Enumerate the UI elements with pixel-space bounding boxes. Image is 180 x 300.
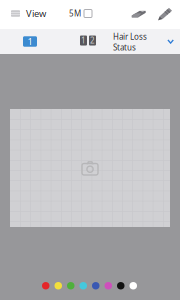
button[interactable]: Colour 3 — [67, 282, 74, 289]
staticText: 1 — [27, 35, 32, 48]
button[interactable]: Colour 2 — [54, 282, 62, 289]
staticText: View — [26, 7, 46, 20]
staticText: 5M — [69, 8, 81, 19]
button[interactable]: Pencil — [155, 4, 175, 25]
button[interactable]: View — [11, 3, 46, 24]
button[interactable]: Colour 8 — [129, 282, 137, 289]
button[interactable]: Colour 6 — [104, 282, 112, 289]
button[interactable]: Layer 1 — [19, 31, 41, 52]
button[interactable]: 5M — [69, 3, 92, 24]
button[interactable]: Colour 5 — [92, 282, 99, 289]
staticText: Status — [113, 42, 136, 53]
button[interactable]: Colour 4 — [79, 282, 87, 289]
button[interactable]: Colour 1 — [42, 282, 49, 289]
button[interactable]: Hair Loss Status — [113, 31, 174, 53]
button[interactable]: Eraser — [128, 4, 150, 25]
staticText: 1 — [81, 35, 86, 46]
staticText: Hair Loss — [113, 31, 147, 42]
staticText: 2 — [90, 35, 95, 46]
button[interactable]: Colour 7 — [117, 282, 124, 289]
button[interactable]: Compare layers 1 and 2 — [76, 30, 100, 51]
